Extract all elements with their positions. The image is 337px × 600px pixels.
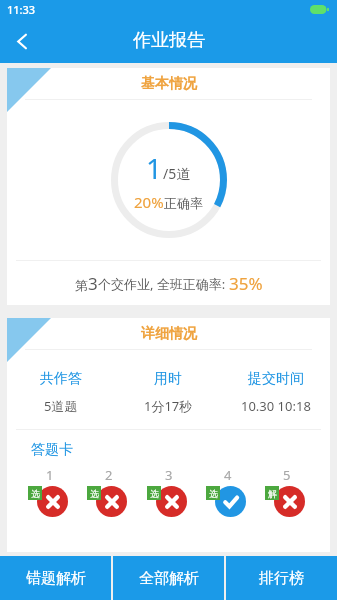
staticText: 作业报告 (133, 29, 205, 52)
button[interactable]: Question 1 (28, 466, 72, 518)
staticText: 个交作业, 全班正确率: (98, 275, 229, 293)
staticText: 1分17秒 (144, 397, 193, 415)
staticText: 第 (75, 277, 88, 293)
staticText: 10.30 10:18 (241, 397, 311, 415)
staticText: 3 (165, 466, 173, 484)
staticText: 正确率 (164, 195, 203, 211)
button[interactable]: Back (0, 19, 44, 63)
staticText: 选 (209, 488, 218, 499)
staticText: 2 (105, 466, 113, 484)
staticText: 选 (31, 488, 40, 499)
staticText: 1 (46, 466, 54, 484)
button[interactable]: Question 4 (206, 466, 250, 518)
button[interactable]: 排行榜 (226, 556, 337, 600)
staticText: 全部解析 (139, 569, 199, 588)
button[interactable]: 全部解析 (113, 556, 224, 600)
staticText: 1 (146, 149, 163, 187)
staticText: 排行榜 (259, 569, 304, 588)
staticText: 5 (283, 466, 291, 484)
staticText: 解 (268, 488, 277, 499)
button[interactable]: Question 3 (147, 466, 191, 518)
staticText: 用时 (154, 370, 182, 388)
staticText: /5道 (163, 164, 191, 183)
staticText: 20% (134, 192, 164, 212)
staticText: 4 (224, 466, 232, 484)
staticText: 详细情况 (141, 325, 197, 343)
staticText: 提交时间 (248, 370, 304, 388)
staticText: 35% (229, 272, 263, 295)
staticText: 选 (150, 488, 159, 499)
staticText: 3 (88, 272, 98, 295)
staticText: 5道题 (44, 397, 78, 415)
button[interactable]: Question 5 (265, 466, 309, 518)
staticText: 共作答 (40, 370, 82, 388)
staticText: 答题卡 (31, 441, 73, 459)
staticText: 11:33 (7, 2, 36, 17)
staticText: 基本情况 (141, 75, 197, 93)
staticText: 错题解析 (26, 569, 86, 588)
button[interactable]: Question 2 (87, 466, 131, 518)
staticText: 选 (90, 488, 99, 499)
button[interactable]: 错题解析 (0, 556, 111, 600)
